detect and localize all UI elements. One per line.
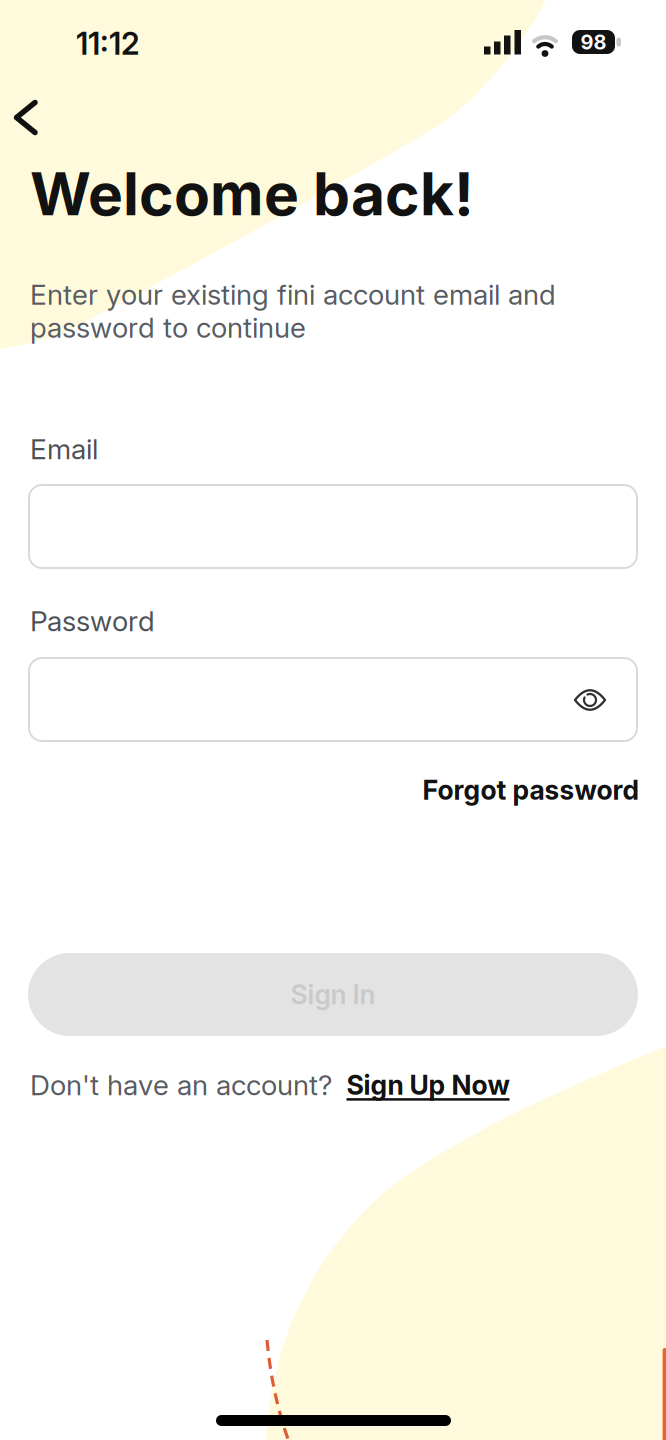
button[interactable]: Show password bbox=[562, 672, 618, 728]
button[interactable]: Forgot password bbox=[422, 774, 639, 806]
staticText: Welcome back! bbox=[30, 159, 474, 229]
staticText: Sign In bbox=[290, 979, 375, 1010]
staticText: Email bbox=[30, 432, 98, 465]
staticText: Forgot password bbox=[422, 774, 639, 806]
staticText: Sign Up Now bbox=[346, 1069, 509, 1101]
staticText: Enter your existing fini account email a… bbox=[30, 278, 556, 344]
staticText: Password bbox=[30, 604, 155, 637]
button[interactable]: Sign In bbox=[28, 953, 638, 1036]
staticText: 98 bbox=[580, 30, 606, 54]
button[interactable]: Sign Up Now bbox=[346, 1069, 509, 1101]
button[interactable]: Back bbox=[4, 95, 48, 139]
staticText: 11:12 bbox=[76, 25, 140, 62]
staticText: Don't have an account? bbox=[30, 1068, 332, 1101]
